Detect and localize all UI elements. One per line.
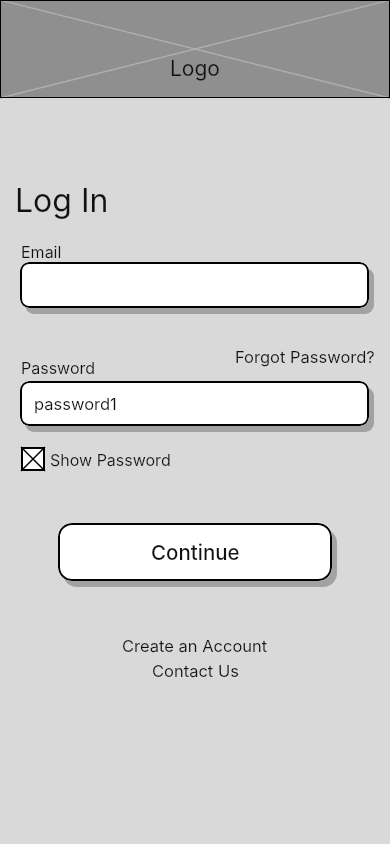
- staticText: Continue: [151, 540, 240, 565]
- staticText: Password: [21, 358, 96, 377]
- staticText: Show Password: [50, 450, 171, 469]
- staticText: Log In: [15, 181, 109, 220]
- button[interactable]: Forgot Password?: [235, 347, 375, 367]
- button[interactable]: Continue: [58, 523, 332, 581]
- staticText: password1: [34, 394, 117, 414]
- button[interactable]: Show Password: [21, 447, 171, 471]
- staticText: Logo: [170, 56, 220, 81]
- button[interactable]: Create an Account: [122, 636, 268, 656]
- button[interactable]: [20, 262, 369, 308]
- button[interactable]: password1: [20, 381, 369, 426]
- staticText: Email: [21, 242, 62, 261]
- button[interactable]: Contact Us: [152, 661, 239, 681]
